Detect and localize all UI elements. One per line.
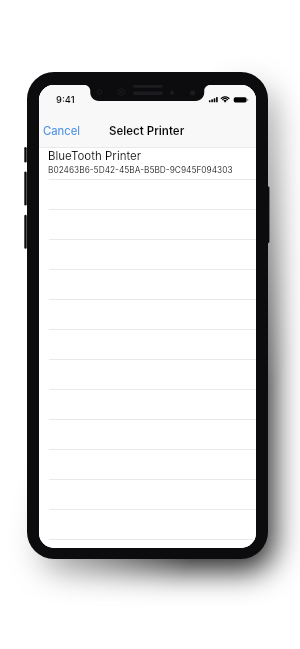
staticText: Select Printer bbox=[109, 124, 185, 138]
button[interactable] bbox=[39, 510, 256, 539]
button[interactable]: BlueTooth Printer bbox=[39, 148, 256, 179]
staticText: BlueTooth Printer bbox=[48, 149, 142, 163]
staticText: B02463B6-5D42-45BA-B5BD-9C945F094303 bbox=[48, 165, 233, 175]
staticText: Cancel bbox=[43, 124, 81, 138]
staticText: 9:41 bbox=[56, 94, 75, 105]
button[interactable]: Cancel bbox=[39, 121, 88, 141]
